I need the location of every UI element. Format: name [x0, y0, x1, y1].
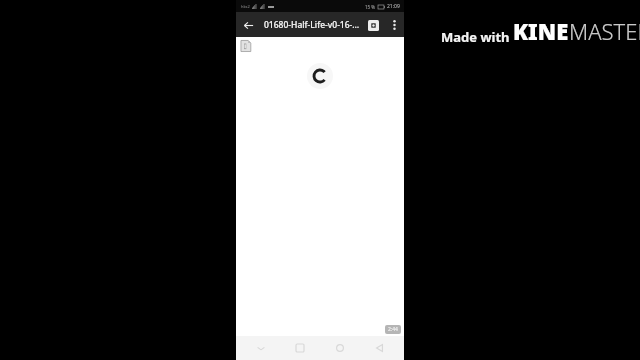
- staticText: 01680-Half-Life-v0-16-…: [264, 19, 360, 31]
- staticText: MASTER: [569, 16, 640, 46]
- button[interactable]: Home: [325, 336, 355, 360]
- staticText: KINE: [513, 16, 569, 46]
- staticText: 15 %: [365, 4, 376, 10]
- button[interactable]: Recents: [285, 336, 315, 360]
- staticText: hks2: [241, 4, 250, 9]
- staticText: Made with: [441, 28, 513, 46]
- button[interactable]: Back: [236, 13, 260, 37]
- staticText: 2:44: [388, 326, 398, 333]
- button[interactable]: Save: [362, 14, 384, 36]
- button[interactable]: Back: [364, 336, 394, 360]
- staticText: 21:09: [387, 3, 400, 10]
- button[interactable]: More options: [384, 15, 404, 35]
